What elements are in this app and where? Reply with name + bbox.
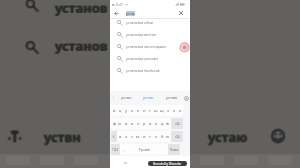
staticText: уствн: [43, 127, 80, 145]
staticText: ⌫: [175, 122, 180, 126]
button[interactable]: ъ: [177, 105, 183, 116]
button[interactable]: ,: [120, 144, 126, 155]
button[interactable]: д: [159, 118, 165, 129]
button[interactable]: с: [129, 131, 135, 142]
staticText: установ: [55, 0, 108, 17]
button[interactable]: м: [135, 131, 141, 142]
button[interactable]: я: [117, 131, 123, 142]
staticText: устаю: [207, 128, 247, 146]
staticText: к: [131, 108, 134, 113]
button[interactable]: Backspace: [171, 118, 183, 129]
staticText: б: [161, 134, 164, 139]
button[interactable]: о: [147, 118, 153, 129]
staticText: ы: [118, 121, 122, 126]
button[interactable]: ?123: [111, 144, 120, 155]
staticText: ф: [113, 121, 116, 126]
staticText: с: [131, 134, 133, 139]
button[interactable]: т: [147, 131, 153, 142]
staticText: ъ: [179, 108, 182, 113]
button[interactable]: Поиск: [168, 144, 180, 155]
staticText: р: [143, 121, 146, 126]
button[interactable]: Shift: [111, 131, 117, 142]
staticText: установ: [56, 0, 109, 17]
staticText: уствн: [44, 127, 81, 145]
staticText: уствн: [45, 128, 82, 146]
button[interactable]: а: [129, 118, 135, 129]
staticText: установ: [54, 36, 107, 54]
staticText: ⌫: [175, 135, 180, 139]
button[interactable]: е: [135, 105, 141, 116]
staticText: установ: [54, 0, 107, 16]
button[interactable]: ю: [165, 131, 171, 142]
staticText: ?123: [112, 148, 119, 152]
staticText: устаю: [209, 127, 249, 145]
staticText: в: [125, 121, 128, 126]
button[interactable]: Back: [112, 9, 120, 17]
staticText: устаю: [208, 128, 248, 146]
staticText: ь: [155, 134, 158, 139]
button[interactable]: й: [111, 105, 117, 116]
button[interactable]: х: [171, 105, 177, 116]
staticText: установ: [55, 36, 108, 54]
button[interactable]: к: [129, 105, 135, 116]
staticText: Recorded by XRecorder: [153, 162, 182, 166]
staticText: установка обои: [126, 20, 153, 25]
button[interactable]: ж: [165, 118, 171, 129]
staticText: о: [149, 121, 152, 126]
button[interactable]: Keyboard settings: [183, 95, 189, 101]
button[interactable]: и: [141, 131, 147, 142]
staticText: установ: [54, 0, 107, 17]
staticText: установ: [56, 36, 109, 54]
staticText: г: [149, 108, 151, 113]
button[interactable]: ы: [117, 118, 123, 129]
button[interactable]: з: [165, 105, 171, 116]
staticText: т: [149, 134, 151, 139]
staticText: устан: [143, 95, 154, 100]
staticText: ⇧: [112, 135, 116, 139]
button[interactable]: установка мессенджей: [110, 40, 190, 52]
staticText: уствн: [45, 127, 82, 145]
button[interactable]: Space: [126, 144, 162, 155]
staticText: установ: [55, 37, 108, 55]
button[interactable]: б: [159, 131, 165, 142]
button[interactable]: Clear: [177, 9, 185, 17]
button[interactable]: установка ватсап: [110, 28, 190, 40]
staticText: установ: [55, 0, 108, 16]
button[interactable]: л: [153, 118, 159, 129]
staticText: ⋮: [111, 95, 115, 100]
button[interactable]: в: [123, 118, 129, 129]
staticText: ц: [119, 108, 122, 113]
staticText: установ: [56, 37, 109, 55]
button[interactable]: Backspace: [171, 131, 183, 142]
staticText: уствн: [43, 129, 80, 147]
button[interactable]: ф: [111, 118, 117, 129]
staticText: х: [173, 108, 176, 113]
button[interactable]: щ: [159, 105, 165, 116]
staticText: Поиск: [170, 148, 179, 152]
staticText: устаю: [209, 129, 249, 147]
button[interactable]: р: [141, 118, 147, 129]
button[interactable]: ь: [153, 131, 159, 142]
staticText: устаю: [207, 127, 247, 145]
staticText: л: [155, 121, 158, 126]
button[interactable]: у: [123, 105, 129, 116]
staticText: и: [143, 134, 146, 139]
staticText: у: [125, 108, 128, 113]
staticText: устан: [121, 95, 132, 100]
button[interactable]: г: [147, 105, 153, 116]
button[interactable]: ц: [117, 105, 123, 116]
button[interactable]: п: [135, 118, 141, 129]
staticText: устаю: [208, 127, 248, 145]
staticText: Русский: [139, 148, 150, 152]
staticText: уствн: [44, 128, 81, 146]
staticText: .: [165, 147, 166, 152]
staticText: устан: [126, 11, 135, 16]
button[interactable]: установка обои: [110, 16, 190, 28]
staticText: ю: [166, 134, 170, 139]
button[interactable]: установка facebook: [110, 64, 190, 76]
button[interactable]: ч: [123, 131, 129, 142]
button[interactable]: н: [141, 105, 147, 116]
button[interactable]: ш: [153, 105, 159, 116]
button[interactable]: установка youtube: [110, 52, 190, 64]
